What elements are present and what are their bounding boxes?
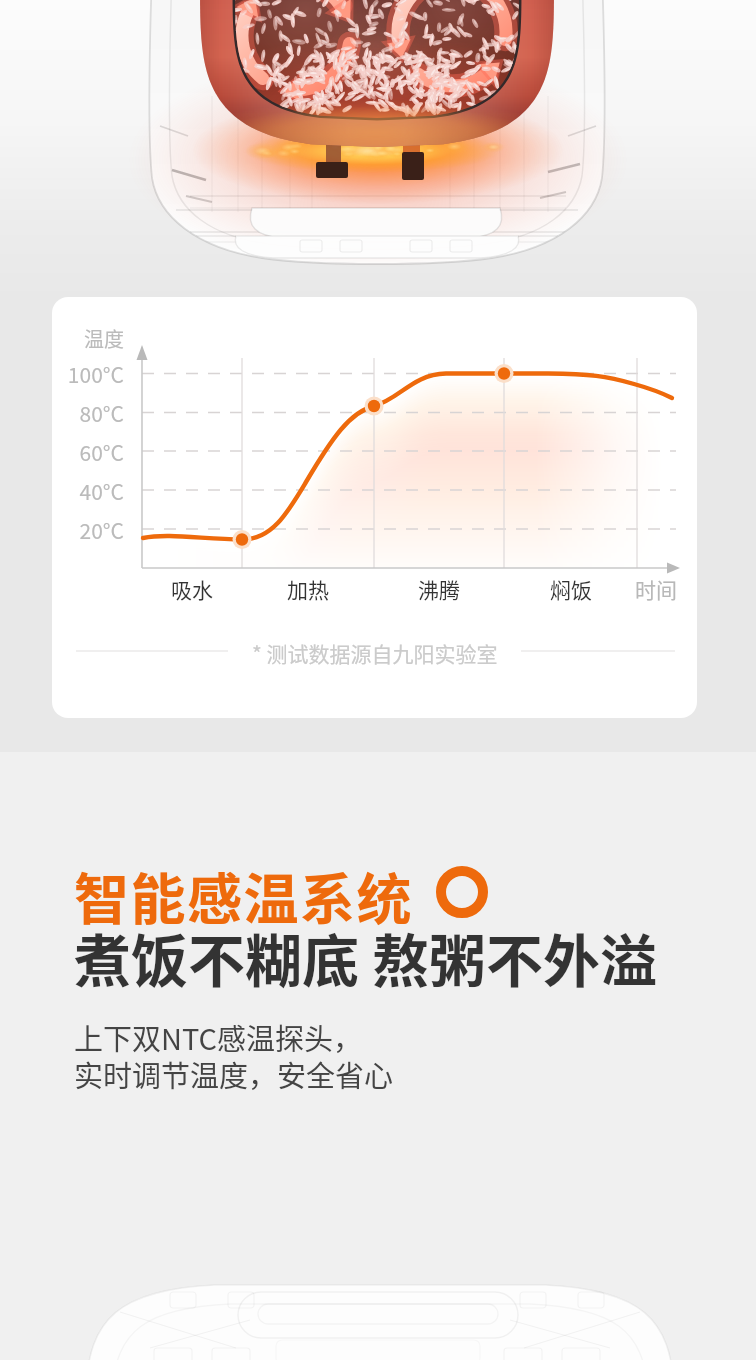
staticText: 智能感温系统 (74, 855, 414, 935)
staticText: 煮饭不糊底 熬粥不外溢 (74, 916, 657, 999)
staticText: 沸腾 (399, 574, 479, 604)
staticText: 焖饭 (531, 574, 611, 604)
staticText: 60°C (52, 437, 124, 467)
staticText: 100°C (52, 359, 124, 389)
staticText: 80°C (52, 398, 124, 428)
staticText: 时间 (616, 574, 696, 604)
staticText: 温度 (52, 324, 124, 353)
staticText: * 测试数据源自九阳实验室 (252, 638, 498, 668)
staticText: 上下双NTC感温探头， 实时调节温度，安全省心 (74, 1016, 394, 1095)
staticText: 40°C (52, 476, 124, 506)
staticText: 吸水 (152, 574, 232, 604)
staticText: 20°C (52, 515, 124, 545)
staticText: 加热 (268, 574, 348, 604)
